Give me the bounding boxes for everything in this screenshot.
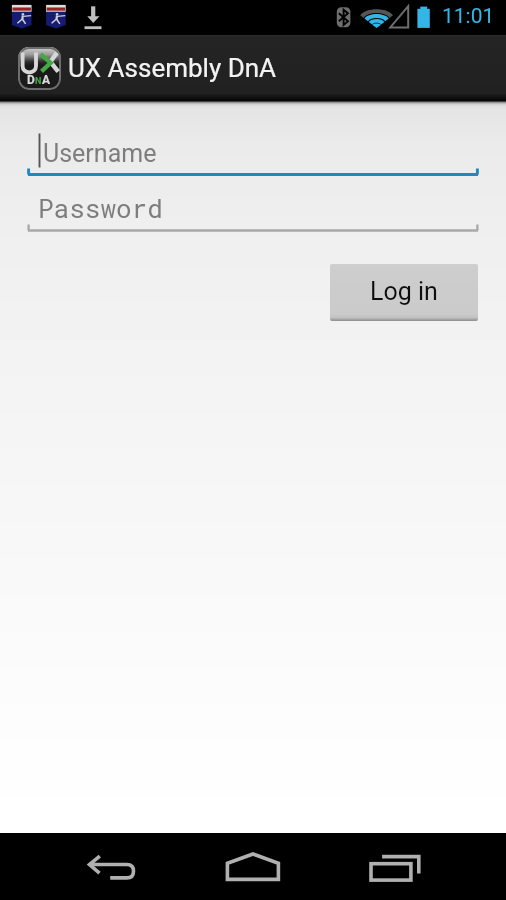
staticText: Password: [38, 191, 163, 225]
button[interactable]: Back: [77, 841, 147, 893]
button[interactable]: App logo: [18, 47, 61, 90]
staticText: D: [27, 73, 35, 87]
button[interactable]: Recent apps: [360, 841, 430, 893]
staticText: 11:01: [442, 4, 495, 29]
button[interactable]: Password: [0, 187, 506, 235]
button[interactable]: Log in: [330, 264, 478, 321]
staticText: UX Assembly DnA: [68, 53, 277, 83]
button[interactable]: Home: [218, 841, 288, 893]
staticText: N: [35, 76, 42, 87]
button[interactable]: Username: [0, 131, 506, 179]
staticText: Username: [43, 139, 157, 168]
staticText: A: [42, 73, 51, 87]
staticText: Log in: [370, 277, 438, 306]
